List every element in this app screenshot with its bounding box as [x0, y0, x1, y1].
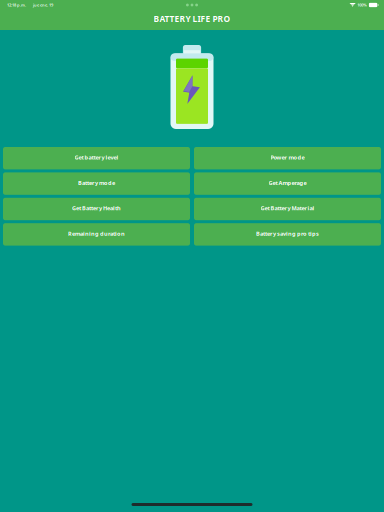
button[interactable]: Battery mode — [3, 172, 190, 195]
staticText: 12:18 p.m. — [7, 2, 26, 8]
button[interactable]: Get Battery Material — [194, 198, 381, 220]
button[interactable]: Power mode — [194, 147, 381, 169]
button[interactable]: Get Amperage — [194, 172, 381, 195]
staticText: BATTERY LIFE PRO — [153, 13, 230, 24]
button[interactable]: Battery saving pro tips — [194, 223, 381, 246]
staticText: Battery mode — [78, 179, 115, 187]
staticText: Remaining duration — [68, 230, 125, 237]
button[interactable]: Get battery level — [3, 147, 190, 169]
staticText: Get Amperage — [268, 179, 306, 187]
staticText: jue ene. 19 — [33, 2, 53, 8]
staticText: Get battery level — [74, 154, 118, 161]
staticText: Power mode — [270, 154, 304, 161]
staticText: Get Battery Health — [72, 204, 121, 212]
button[interactable]: Get Battery Health — [3, 198, 190, 220]
staticText: Get Battery Material — [260, 204, 314, 212]
button[interactable]: Remaining duration — [3, 223, 190, 246]
staticText: Battery saving pro tips — [256, 230, 319, 237]
staticText: 100% — [357, 2, 367, 8]
